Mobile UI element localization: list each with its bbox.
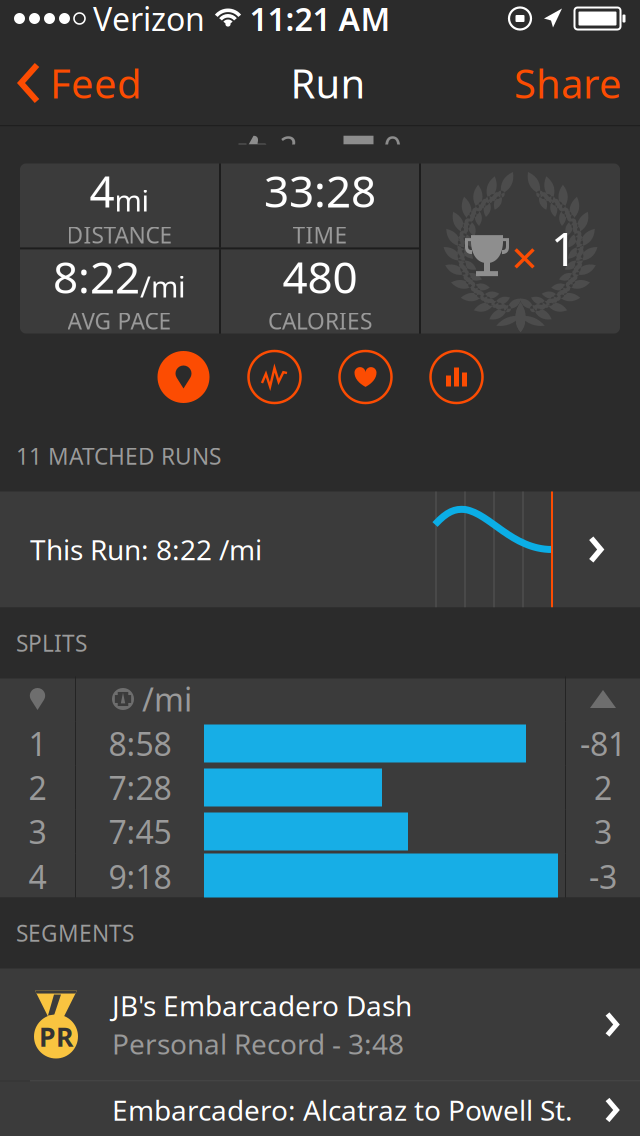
staticText: 11:21 AM [249, 0, 390, 40]
staticText: 2 [594, 766, 612, 809]
staticText: Share [514, 56, 622, 109]
staticText: 0 [383, 126, 401, 169]
button[interactable]: Share [514, 39, 640, 126]
staticText: Verizon [85, 0, 205, 40]
button[interactable]: PR [0, 968, 640, 1080]
staticText: 3 [594, 810, 612, 853]
staticText: JB's Embarcadero Dash [112, 987, 412, 1024]
staticText: ✕ [510, 239, 539, 279]
button[interactable]: Feed [0, 39, 142, 126]
button[interactable]: Analysis [246, 349, 302, 405]
staticText: SEGMENTS [16, 918, 134, 948]
staticText: DISTANCE [66, 220, 172, 250]
button[interactable]: Embarcadero: Alcatraz to Powell St. [0, 1081, 640, 1136]
staticText: SPLITS [16, 628, 87, 658]
staticText: PR [39, 1019, 73, 1054]
staticText: 4 [28, 855, 46, 898]
staticText: -3 [589, 855, 617, 898]
staticText: /mi [142, 678, 192, 720]
staticText: 1 [28, 722, 46, 765]
staticText: TIME [292, 220, 347, 250]
staticText: 7:28 [108, 766, 171, 809]
staticText: 2 [279, 126, 297, 169]
staticText: mi [114, 181, 149, 220]
staticText: CALORIES [268, 306, 372, 336]
staticText: 8:58 [108, 722, 171, 765]
staticText: 11 MATCHED RUNS [16, 441, 221, 471]
staticText: 7:45 [108, 810, 171, 853]
button[interactable]: Heart rate [337, 349, 393, 405]
staticText: 1 [539, 218, 577, 279]
button[interactable]: This Run: 8:22 /mi [0, 491, 640, 607]
staticText: This Run: 8:22 /mi [30, 531, 262, 568]
staticText: -81 [580, 722, 626, 765]
staticText: AVG PACE [67, 306, 171, 336]
staticText: Personal Record - 3:48 [112, 1025, 404, 1062]
staticText: /mi [140, 267, 186, 306]
staticText: 33:28 [264, 161, 376, 220]
staticText: 4 [89, 161, 114, 220]
staticText: Feed [50, 56, 142, 109]
button[interactable]: Stats [428, 349, 484, 405]
staticText: 8:22 [53, 247, 140, 306]
staticText: 480 [282, 247, 357, 306]
staticText: Run [290, 56, 365, 109]
staticText: 3 [28, 810, 46, 853]
staticText: 2 [28, 766, 46, 809]
staticText: 9:18 [108, 855, 171, 898]
button[interactable]: Map [155, 349, 211, 405]
staticText: Embarcadero: Alcatraz to Powell St. [112, 1091, 573, 1129]
